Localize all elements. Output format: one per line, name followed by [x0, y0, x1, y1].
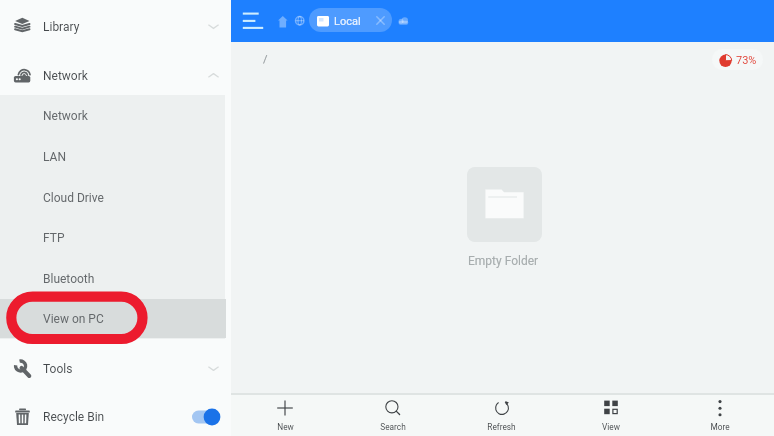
button[interactable]: View	[556, 395, 665, 436]
button[interactable]: Network location	[295, 16, 304, 25]
button[interactable]: Cloud Drive	[0, 177, 231, 218]
staticText: Network	[43, 109, 88, 123]
staticText: Tools	[43, 362, 73, 376]
button[interactable]: 73%	[719, 53, 757, 68]
button[interactable]: View on PC	[0, 298, 231, 339]
staticText: View	[602, 422, 620, 432]
button[interactable]: Network	[0, 51, 231, 100]
button[interactable]: New	[231, 395, 339, 436]
staticText: /	[263, 53, 268, 66]
button[interactable]: Menu	[236, 5, 268, 37]
staticText: Bluetooth	[43, 272, 95, 286]
button[interactable]: Recycle Bin	[0, 392, 231, 436]
button[interactable]: Bluetooth	[0, 258, 231, 299]
button[interactable]: More	[665, 395, 774, 436]
staticText: Refresh	[487, 422, 516, 432]
staticText: Empty Folder	[468, 254, 539, 268]
button[interactable]: Network	[0, 95, 231, 136]
button[interactable]: LAN	[0, 136, 231, 177]
staticText: View on PC	[43, 312, 104, 326]
staticText: FTP	[43, 231, 65, 245]
button[interactable]: Local	[309, 8, 392, 32]
staticText: Cloud Drive	[43, 191, 104, 205]
button[interactable]: /	[263, 52, 268, 66]
button[interactable]: Tools	[0, 344, 231, 393]
staticText: New	[277, 422, 294, 432]
button[interactable]: Library	[0, 2, 231, 51]
staticText: Recycle Bin	[43, 410, 105, 424]
button[interactable]: Home	[278, 16, 288, 27]
button[interactable]: Cloud storage	[398, 17, 409, 25]
button[interactable]: FTP	[0, 217, 231, 258]
staticText: Library	[43, 20, 80, 34]
staticText: Search	[380, 422, 406, 432]
button[interactable]: Search	[339, 395, 447, 436]
staticText: LAN	[43, 150, 66, 164]
staticText: Local	[334, 15, 361, 28]
staticText: 73%	[736, 54, 757, 67]
button[interactable]: Refresh	[447, 395, 556, 436]
staticText: More	[710, 422, 730, 432]
staticText: Network	[43, 69, 88, 83]
